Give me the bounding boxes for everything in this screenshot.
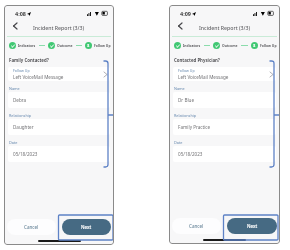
staticText: 4:08 [15,10,26,17]
button[interactable]: 3 [85,42,111,49]
staticText: 05/18/2023 [13,151,38,157]
staticText: Follow Up [178,68,195,73]
staticText: Outcome [222,43,238,48]
staticText: Follow Up [13,68,30,73]
staticText: Family Practice [178,124,211,130]
staticText: Family Contacted? [9,57,49,63]
button[interactable]: Outcome [48,42,73,49]
staticText: Next [247,223,258,229]
button[interactable]: Follow Up [13,67,107,81]
button[interactable]: Follow Up [178,67,273,81]
button[interactable]: Indicators [9,42,36,49]
staticText: Date [9,140,18,145]
staticText: Cancel [24,224,39,230]
staticText: Daughter [13,124,34,130]
button[interactable]: Next [227,218,277,234]
button[interactable]: 05/18/2023 [173,146,276,162]
button[interactable]: Daughter [8,119,110,135]
button[interactable]: Back [8,19,21,32]
button[interactable]: Outcome [213,42,238,49]
staticText: Indicators [18,43,36,48]
button[interactable]: Next [62,219,111,235]
staticText: Follow Up [94,43,111,48]
button[interactable]: Indicators [174,42,201,49]
button[interactable]: Cancel [172,218,221,234]
button[interactable]: Family Practice [173,119,276,135]
staticText: Name [9,86,20,91]
staticText: Follow Up [260,43,277,48]
button[interactable]: 05/18/2023 [8,146,110,162]
staticText: Dr Blue [178,97,195,103]
button[interactable]: 3 [251,42,277,49]
staticText: Cancel [189,223,204,229]
button[interactable]: Dr Blue [173,92,276,108]
staticText: Date [174,140,183,145]
staticText: 3 [87,43,90,48]
staticText: Incident Report (3/3) [33,24,85,31]
staticText: Relationship [9,113,32,118]
staticText: 3 [253,43,256,48]
staticText: Outcome [57,43,73,48]
staticText: Left VoiceMail Message [178,74,229,80]
staticText: Debra [13,97,27,103]
button[interactable]: Cancel [7,219,56,235]
staticText: Incident Report (3/3) [199,24,251,31]
staticText: Relationship [174,113,197,118]
staticText: 05/18/2023 [178,151,203,157]
staticText: Left VoiceMail Message [13,74,64,80]
staticText: Indicators [183,43,201,48]
staticText: Contacted Physician? [174,57,220,63]
staticText: Next [81,224,92,230]
staticText: 4:09 [180,10,191,17]
staticText: Name [174,86,185,91]
button[interactable]: Back [173,19,186,32]
button[interactable]: Debra [8,92,110,108]
